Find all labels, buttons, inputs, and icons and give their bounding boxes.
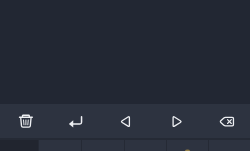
button[interactable]: Move cursor left xyxy=(100,104,150,138)
button[interactable]: Backspace xyxy=(200,104,250,138)
button[interactable]: Enter xyxy=(50,104,100,138)
button[interactable]: Food xyxy=(167,140,208,151)
button[interactable]: Move cursor right xyxy=(150,104,200,138)
button[interactable]: Delete xyxy=(0,104,50,138)
